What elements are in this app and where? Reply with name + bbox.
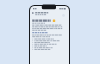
button[interactable]: [32, 44, 62, 46]
button[interactable]: [32, 48, 62, 50]
button[interactable]: [32, 46, 62, 48]
button[interactable]: [32, 42, 62, 44]
button[interactable]: [32, 40, 62, 42]
button[interactable]: [32, 38, 62, 40]
button[interactable]: Account: [62, 14, 65, 17]
button[interactable]: Back: [31, 11, 34, 14]
